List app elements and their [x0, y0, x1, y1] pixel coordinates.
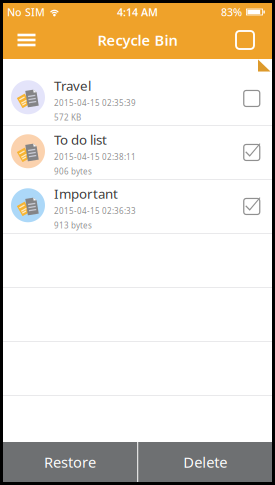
- staticText: 2015-04-15 02:35:39: [54, 97, 136, 108]
- button[interactable]: Important: [3, 180, 272, 233]
- staticText: 2015-04-15 02:38:11: [54, 151, 136, 162]
- button[interactable]: Select all: [224, 21, 266, 59]
- staticText: 906 bytes: [54, 166, 92, 177]
- button[interactable]: Travel: [3, 72, 272, 125]
- button[interactable]: To do list: [3, 126, 272, 179]
- staticText: 83%: [221, 5, 242, 19]
- staticText: 913 bytes: [54, 220, 92, 231]
- staticText: Restore: [44, 452, 96, 472]
- button[interactable]: Restore: [3, 442, 137, 482]
- staticText: Travel: [54, 77, 91, 94]
- staticText: Important: [54, 185, 118, 202]
- staticText: 572 KB: [54, 112, 81, 123]
- staticText: To do list: [54, 131, 107, 148]
- staticText: 4:14 AM: [117, 5, 158, 19]
- staticText: 2015-04-15 02:36:33: [54, 205, 136, 216]
- staticText: No SIM: [7, 5, 45, 19]
- staticText: Delete: [183, 452, 227, 472]
- button[interactable]: Delete: [138, 442, 272, 482]
- staticText: Recycle Bin: [97, 30, 177, 50]
- button[interactable]: Menu: [5, 21, 48, 59]
